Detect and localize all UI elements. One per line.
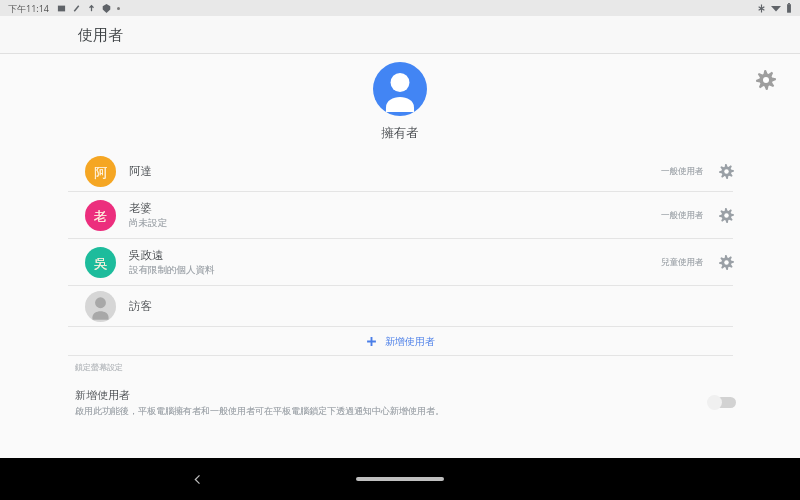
button[interactable]: Add users toggle <box>706 391 740 413</box>
button[interactable]: Settings for 老婆 <box>714 203 738 227</box>
staticText: 一般使用者 <box>661 166 704 177</box>
button[interactable]: 新增使用者 <box>0 384 800 424</box>
button[interactable]: Owner avatar <box>373 62 427 116</box>
button[interactable]: 阿 <box>0 151 800 191</box>
staticText: 尚未設定 <box>129 217 167 229</box>
staticText: 老婆 <box>129 201 152 215</box>
button[interactable]: Home <box>356 469 444 489</box>
button[interactable]: Settings <box>744 58 788 102</box>
button[interactable]: 吳 <box>0 239 800 285</box>
button[interactable]: Settings for 阿達 <box>714 159 738 183</box>
button[interactable]: 老 <box>0 192 800 238</box>
staticText: 阿 <box>94 164 107 180</box>
staticText: 使用者 <box>78 26 123 45</box>
staticText: 吳 <box>94 255 107 271</box>
button[interactable]: Settings for 吳政遠 <box>714 250 738 274</box>
staticText: 兒童使用者 <box>661 257 704 268</box>
button[interactable]: 訪客 <box>0 286 800 326</box>
button[interactable]: 新增使用者 <box>0 327 800 355</box>
staticText: 老 <box>94 208 107 224</box>
staticText: 訪客 <box>129 299 152 313</box>
button[interactable]: Back <box>180 462 214 496</box>
staticText: 新增使用者 <box>385 335 435 348</box>
staticText: 一般使用者 <box>661 210 704 221</box>
staticText: 鎖定螢幕設定 <box>75 362 123 372</box>
staticText: 阿達 <box>129 164 152 178</box>
staticText: 啟用此功能後，平板電腦擁有者和一般使用者可在平板電腦鎖定下透過通知中心新增使用者… <box>75 405 444 416</box>
staticText: 新增使用者 <box>75 388 130 402</box>
staticText: 吳政遠 <box>129 248 164 262</box>
staticText: 擁有者 <box>381 125 419 141</box>
staticText: 設有限制的個人資料 <box>129 264 215 276</box>
staticText: 下午11:14 <box>8 2 50 14</box>
